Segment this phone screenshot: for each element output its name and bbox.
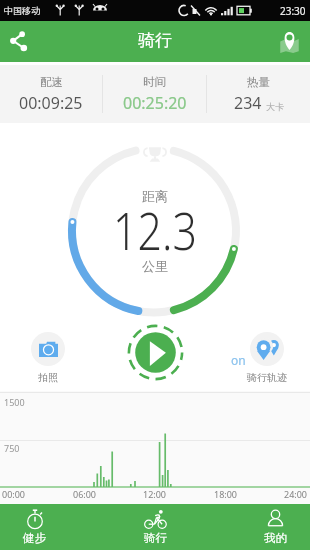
- staticText: 12.3: [113, 195, 197, 264]
- staticText: 18:00: [214, 488, 238, 500]
- staticText: 健步: [23, 531, 46, 545]
- button[interactable]: Map: [268, 21, 310, 62]
- staticText: 1500: [4, 396, 25, 408]
- staticText: 热量: [247, 75, 270, 89]
- staticText: 24:00: [284, 488, 308, 500]
- staticText: 公里: [142, 258, 168, 274]
- staticText: 骑行: [138, 30, 172, 51]
- staticText: 时间: [143, 75, 166, 89]
- staticText: 配速: [40, 75, 63, 89]
- staticText: 234: [234, 92, 262, 114]
- staticText: 拍照: [38, 371, 58, 384]
- staticText: on: [231, 352, 246, 368]
- staticText: 23:30: [280, 4, 306, 18]
- button[interactable]: 骑行轨迹: [238, 332, 296, 384]
- button[interactable]: 健步: [22, 504, 47, 550]
- staticText: 750: [4, 442, 20, 454]
- button[interactable]: 拍照: [19, 332, 77, 384]
- button[interactable]: 我的: [263, 504, 288, 550]
- button[interactable]: Start: [128, 325, 183, 380]
- staticText: 00:25:20: [123, 92, 187, 114]
- staticText: 06:00: [73, 488, 97, 500]
- staticText: 我的: [264, 531, 287, 545]
- staticText: 骑行: [144, 531, 167, 545]
- staticText: 骑行轨迹: [247, 371, 287, 384]
- button[interactable]: Share: [0, 21, 37, 62]
- staticText: 距离: [142, 188, 168, 204]
- staticText: 大卡: [266, 101, 284, 112]
- staticText: 中国移动: [4, 5, 40, 16]
- staticText: 00:09:25: [19, 92, 83, 114]
- button[interactable]: 骑行: [143, 504, 168, 550]
- staticText: 12:00: [143, 488, 167, 500]
- staticText: 00:00: [2, 488, 26, 500]
